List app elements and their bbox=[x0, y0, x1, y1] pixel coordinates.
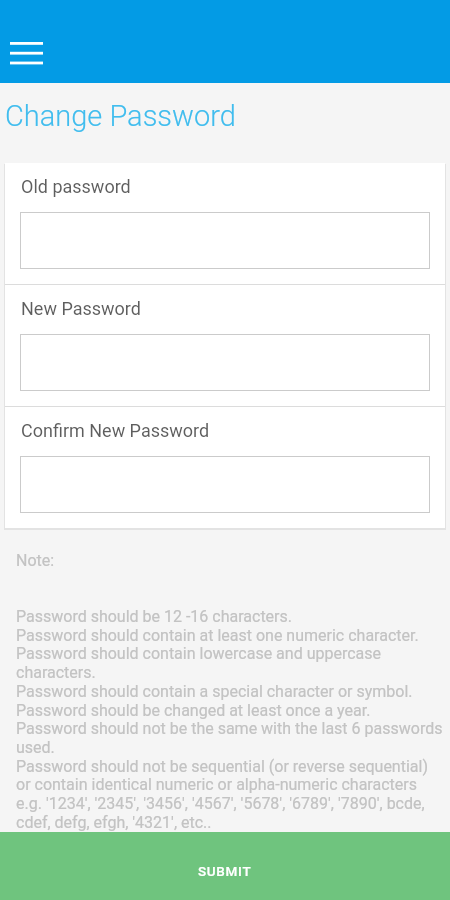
button[interactable] bbox=[20, 334, 430, 391]
staticText: Note: bbox=[16, 551, 55, 570]
staticText: Password should be 12 -16 characters. bbox=[16, 607, 292, 626]
button[interactable] bbox=[20, 456, 430, 513]
staticText: Password should not be the same with the… bbox=[16, 719, 443, 738]
staticText: Password should contain a special charac… bbox=[16, 682, 413, 701]
staticText: SUBMIT bbox=[198, 863, 252, 879]
staticText: Old password bbox=[21, 176, 131, 197]
button[interactable]: SUBMIT bbox=[0, 832, 450, 900]
button[interactable] bbox=[20, 212, 430, 269]
staticText: e.g. '1234', '2345', '3456', '4567', '56… bbox=[16, 794, 425, 813]
staticText: characters. bbox=[16, 663, 96, 682]
staticText: Confirm New Password bbox=[21, 420, 210, 441]
staticText: cdef, defg, efgh, '4321', etc.. bbox=[16, 813, 212, 832]
staticText: Change Password bbox=[5, 99, 236, 133]
staticText: Password should not be sequential (or re… bbox=[16, 757, 428, 776]
staticText: New Password bbox=[21, 298, 141, 319]
staticText: Password should be changed at least once… bbox=[16, 701, 371, 720]
button[interactable]: Open navigation menu bbox=[10, 42, 43, 65]
staticText: Password should contain at least one num… bbox=[16, 626, 419, 645]
staticText: Password should contain lowercase and up… bbox=[16, 644, 381, 663]
staticText: used. bbox=[16, 738, 55, 757]
staticText: or contain identical numeric or alpha-nu… bbox=[16, 775, 417, 794]
